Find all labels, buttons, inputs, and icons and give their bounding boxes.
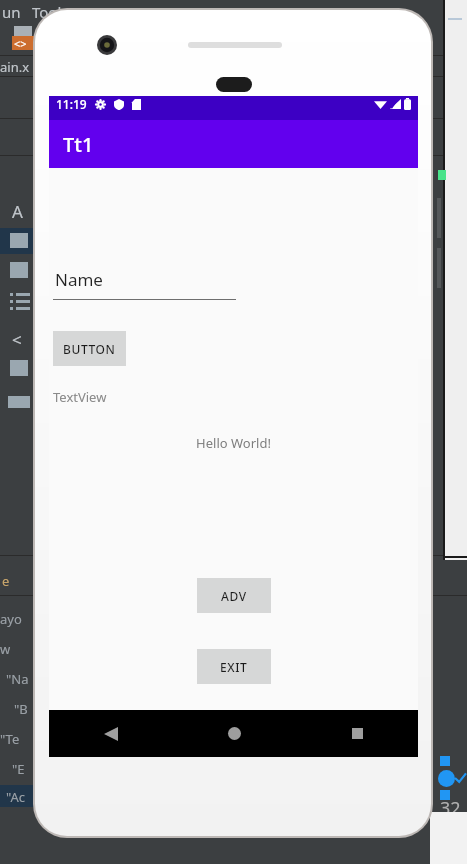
staticText: A [12,200,23,223]
staticText: "Te [0,730,20,748]
button[interactable]: Name [53,268,236,300]
staticText: < [12,328,22,351]
button[interactable]: Home [210,710,258,757]
staticText: Name [55,268,103,291]
staticText: ayo [0,610,22,628]
staticText: 32 [440,796,461,821]
button[interactable]: BUTTON [53,331,126,366]
staticText: un [2,2,21,22]
button[interactable]: EXIT [197,649,271,684]
staticText: EXIT [220,659,248,675]
staticText: "Ac [6,788,25,806]
staticText: w [0,640,11,658]
staticText: TextView [53,388,107,406]
staticText: "Na [6,670,29,688]
staticText: Tool [32,2,62,22]
button[interactable]: ADV [197,578,271,613]
staticText: ain.x [0,58,30,76]
staticText: "E [12,760,25,778]
staticText: e [2,572,10,590]
button[interactable]: Back [87,710,135,757]
staticText: <> [14,36,27,51]
staticText: Hello World! [49,434,418,452]
staticText: 11:19 [56,96,87,112]
staticText: "B [14,700,28,718]
staticText: BUTTON [63,341,116,357]
button[interactable]: Recents [333,710,381,757]
staticText: ADV [221,588,247,604]
staticText: Tt1 [63,131,94,158]
